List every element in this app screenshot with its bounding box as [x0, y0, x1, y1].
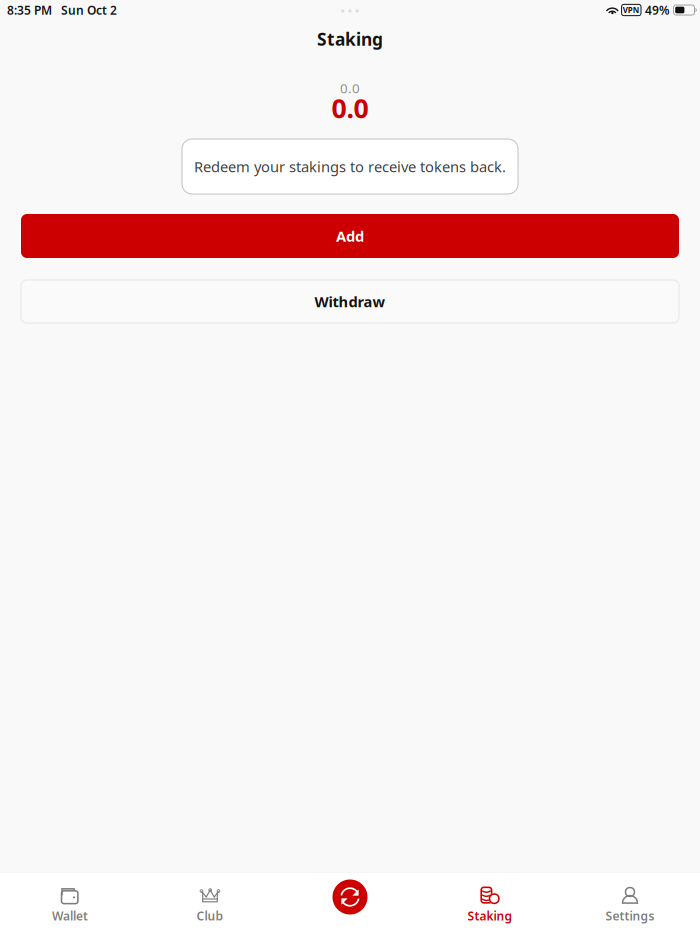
staticText: Settings — [605, 908, 654, 924]
staticText: 0.0 — [340, 79, 360, 97]
staticText: Withdraw — [314, 292, 385, 311]
button[interactable]: Swap — [332, 879, 367, 914]
staticText: VPN — [623, 5, 640, 15]
button[interactable]: Staking — [420, 872, 560, 934]
staticText: Club — [196, 908, 223, 924]
staticText: Sun Oct 2 — [61, 2, 117, 18]
staticText: 0.0 — [331, 90, 368, 126]
staticText: Redeem your stakings to receive tokens b… — [194, 157, 506, 176]
button[interactable]: Wallet — [0, 872, 140, 934]
button[interactable]: Club — [140, 872, 280, 934]
staticText: Add — [336, 226, 364, 246]
staticText: Staking — [467, 908, 512, 924]
staticText: Wallet — [52, 908, 88, 924]
button[interactable]: Withdraw — [21, 280, 679, 323]
button[interactable]: Settings — [560, 872, 700, 934]
staticText: 49% — [645, 2, 670, 18]
staticText: 8:35 PM — [7, 2, 52, 18]
staticText: Staking — [317, 27, 383, 50]
button[interactable]: Add — [21, 214, 679, 258]
